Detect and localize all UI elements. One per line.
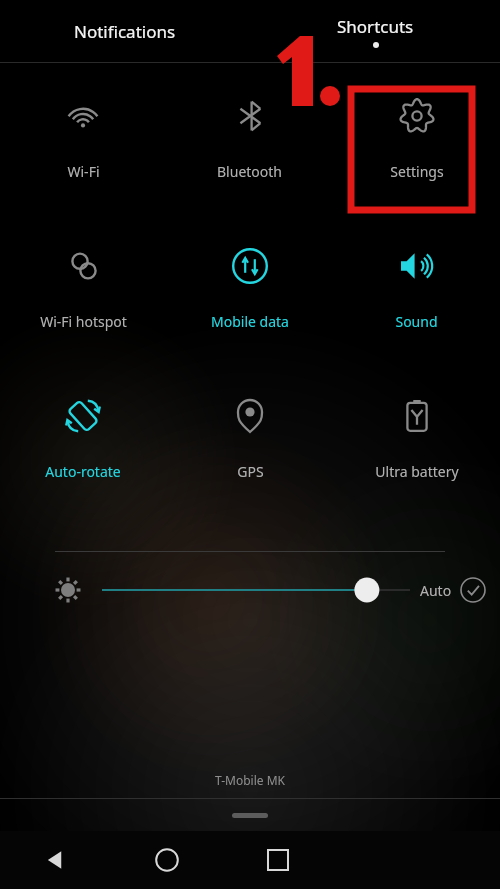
button[interactable]: Sound	[333, 213, 500, 363]
button[interactable]: Mobile data	[166, 213, 333, 363]
staticText: Settings	[390, 162, 444, 181]
staticText: Wi-Fi hotspot	[40, 312, 127, 331]
staticText: Auto-rotate	[45, 462, 121, 481]
button[interactable]: Auto-rotate	[0, 363, 166, 513]
staticText: Notifications	[74, 20, 176, 43]
button[interactable]: Brightness	[48, 570, 88, 610]
button[interactable]: Home	[111, 831, 222, 889]
button[interactable]: Notifications	[0, 0, 250, 63]
staticText: Mobile data	[211, 312, 289, 331]
staticText: Sound	[395, 312, 438, 331]
button[interactable]: Bluetooth	[166, 63, 333, 213]
staticText: Wi-Fi	[67, 162, 100, 181]
button[interactable]: Wi-Fi	[0, 63, 166, 213]
button[interactable]: Auto	[420, 577, 500, 603]
staticText: Auto	[420, 581, 452, 600]
staticText: Ultra battery	[375, 462, 459, 481]
button[interactable]: Shortcuts	[250, 0, 500, 63]
button[interactable]: GPS	[166, 363, 333, 513]
button[interactable]: Back	[0, 831, 111, 889]
staticText: Bluetooth	[217, 162, 282, 181]
button[interactable]: Ultra battery	[333, 363, 500, 513]
staticText: Shortcuts	[337, 15, 414, 38]
button[interactable]: Settings	[333, 63, 500, 213]
staticText: T-Mobile MK	[215, 772, 285, 788]
button[interactable]: Wi-Fi hotspot	[0, 213, 166, 363]
button[interactable]: Brightness slider	[102, 570, 410, 610]
staticText: GPS	[237, 462, 264, 481]
button[interactable]: Collapse panel	[0, 799, 500, 831]
button[interactable]: Recent apps	[222, 831, 333, 889]
